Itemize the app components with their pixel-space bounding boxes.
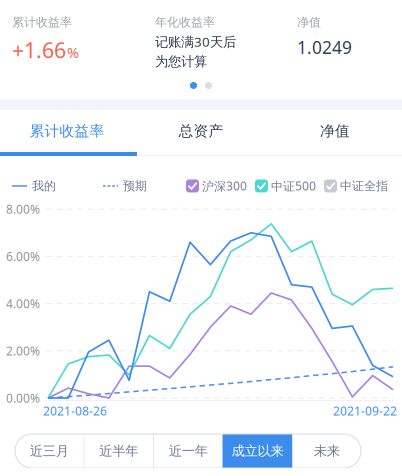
staticText: 未来 bbox=[314, 443, 340, 459]
staticText: 预期 bbox=[123, 179, 147, 193]
staticText: 近一年 bbox=[169, 443, 208, 459]
button[interactable]: 总资产 bbox=[134, 110, 268, 152]
staticText: 近半年 bbox=[99, 443, 138, 459]
button[interactable]: 近半年 bbox=[84, 434, 153, 468]
staticText: 累计收益率 bbox=[12, 15, 72, 30]
staticText: 沪深300 bbox=[202, 178, 247, 194]
staticText: 记账满30天后 bbox=[155, 33, 236, 50]
staticText: 总资产 bbox=[178, 122, 223, 140]
staticText: 0.00% bbox=[6, 390, 40, 406]
staticText: 中证全指 bbox=[340, 179, 388, 193]
staticText: 累计收益率 bbox=[29, 122, 104, 140]
staticText: 为您计算 bbox=[155, 53, 207, 70]
button[interactable]: 净值 bbox=[268, 110, 402, 152]
staticText: 2021-09-22 bbox=[333, 403, 397, 419]
button[interactable]: 成立以来 bbox=[222, 434, 292, 468]
staticText: 成立以来 bbox=[231, 443, 283, 459]
staticText: 4.00% bbox=[6, 296, 40, 311]
button[interactable]: 未来 bbox=[292, 434, 361, 468]
staticText: 中证500 bbox=[271, 178, 316, 194]
staticText: 6.00% bbox=[6, 248, 40, 264]
staticText: % bbox=[67, 43, 79, 62]
button[interactable]: 我的 bbox=[12, 179, 56, 193]
staticText: 年化收益率 bbox=[155, 15, 215, 30]
staticText: 1.0249 bbox=[297, 36, 352, 59]
staticText: 2.00% bbox=[6, 343, 40, 359]
staticText: 我的 bbox=[32, 179, 56, 193]
button[interactable]: 中证500 bbox=[255, 178, 316, 194]
button[interactable]: 预期 bbox=[103, 179, 147, 193]
button[interactable]: 中证全指 bbox=[324, 179, 388, 193]
staticText: 2021-08-26 bbox=[43, 403, 107, 419]
button[interactable]: 近一年 bbox=[154, 434, 222, 468]
button[interactable]: 累计收益率 bbox=[0, 110, 134, 152]
staticText: 8.00% bbox=[6, 201, 40, 217]
button[interactable]: 近三月 bbox=[15, 434, 83, 468]
staticText: +1.66 bbox=[12, 36, 66, 64]
staticText: 净值 bbox=[320, 122, 350, 140]
button[interactable]: 沪深300 bbox=[186, 178, 247, 194]
staticText: 净值 bbox=[297, 15, 321, 30]
staticText: 近三月 bbox=[30, 443, 69, 459]
